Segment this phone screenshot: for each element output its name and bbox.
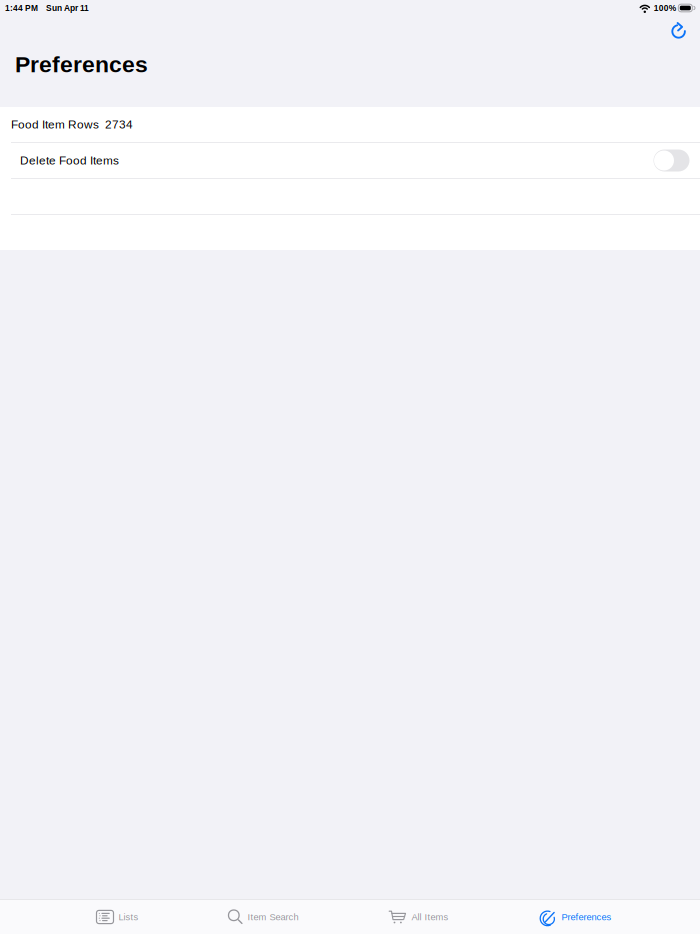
staticText: 1:44 PM: [5, 3, 38, 13]
button[interactable]: Refresh: [663, 13, 695, 46]
staticText: Food Item Rows 2734: [11, 118, 133, 131]
staticText: Preferences: [561, 912, 611, 922]
staticText: Sun Apr 11: [46, 3, 89, 13]
staticText: 100%: [654, 3, 676, 13]
staticText: Delete Food Items: [20, 154, 119, 167]
button[interactable]: Item Search: [216, 899, 310, 934]
button[interactable]: All Items: [376, 899, 460, 934]
staticText: All Items: [411, 912, 448, 922]
button[interactable]: Lists: [84, 899, 150, 934]
staticText: Preferences: [15, 51, 148, 77]
staticText: Lists: [118, 912, 138, 922]
button[interactable]: Preferences: [526, 899, 623, 934]
button[interactable]: Delete Food Items: [0, 143, 700, 178]
staticText: Item Search: [247, 912, 298, 922]
